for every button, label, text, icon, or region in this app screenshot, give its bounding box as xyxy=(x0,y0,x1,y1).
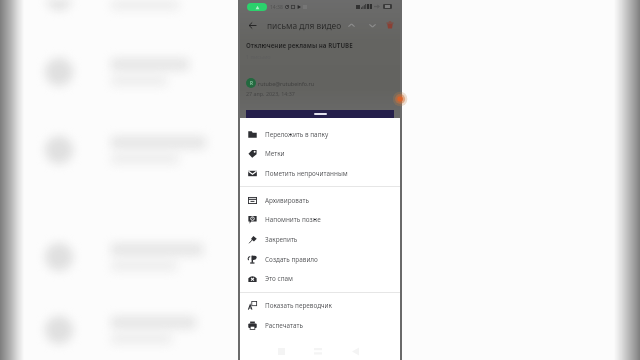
button[interactable]: Создать правило xyxy=(240,249,400,269)
button[interactable]: Показать переводчик xyxy=(240,295,400,315)
button[interactable]: Назад xyxy=(241,14,263,36)
staticText: Метки xyxy=(265,149,285,158)
button[interactable]: Закрепить xyxy=(240,229,400,249)
staticText: 27 апр. 2023, 14:37 xyxy=(246,90,295,97)
staticText: Архивировать xyxy=(265,196,309,205)
staticText: письма для видео xyxy=(267,20,342,31)
staticText: rutube@rutubeinfo.ru xyxy=(258,80,315,87)
staticText: Закрепить xyxy=(265,235,298,244)
staticText: Показать переводчик xyxy=(265,301,332,310)
button[interactable]: Метки xyxy=(240,143,400,163)
staticText: Это спам xyxy=(265,274,293,283)
staticText: 14:38 xyxy=(270,4,283,11)
button[interactable]: Предыдущее xyxy=(340,14,362,36)
button[interactable]: Удалить xyxy=(379,14,401,36)
button[interactable]: Пометить непрочитанным xyxy=(240,163,400,183)
button[interactable]: Напомнить позже xyxy=(240,209,400,229)
button[interactable]: Это спам xyxy=(240,268,400,288)
staticText: Напомнить позже xyxy=(265,215,321,224)
staticText: Создать правило xyxy=(265,255,318,264)
button[interactable]: Архивировать xyxy=(240,190,400,210)
staticText: Переложить в папку xyxy=(265,130,329,139)
staticText: R xyxy=(250,80,253,86)
button[interactable]: Распечатать xyxy=(240,315,400,335)
staticText: Распечатать xyxy=(265,321,303,330)
button[interactable]: Переложить в папку xyxy=(240,124,400,144)
button[interactable]: Следующее xyxy=(361,14,383,36)
staticText: Отключение рекламы на RUTUBE xyxy=(246,41,353,49)
button[interactable]: Написать письмо xyxy=(390,92,404,106)
staticText: Пометить непрочитанным xyxy=(265,169,348,178)
